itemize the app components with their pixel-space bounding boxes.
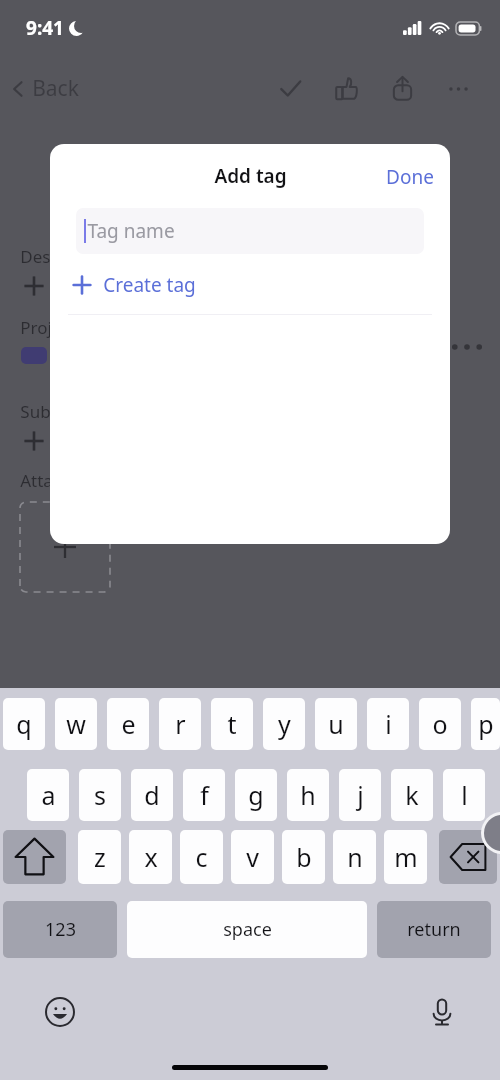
button[interactable]: c: [180, 830, 223, 884]
button[interactable]: Back: [0, 68, 89, 109]
staticText: e: [121, 707, 136, 741]
staticText: Attachments: [20, 469, 122, 492]
button[interactable]: j: [339, 769, 381, 821]
button[interactable]: w: [55, 698, 97, 750]
staticText: o: [432, 707, 448, 741]
button[interactable]: e: [107, 698, 149, 750]
staticText: 9:41: [26, 15, 64, 41]
button[interactable]: o: [419, 698, 461, 750]
staticText: space: [223, 917, 272, 942]
staticText: Tag name: [87, 218, 175, 244]
staticText: Create tag: [103, 272, 196, 298]
button[interactable]: l: [443, 769, 485, 821]
button[interactable]: p: [471, 698, 500, 750]
staticText: d: [144, 778, 160, 812]
button[interactable]: z: [78, 830, 121, 884]
button[interactable]: m: [384, 830, 427, 884]
button[interactable]: t: [211, 698, 253, 750]
button[interactable]: s: [79, 769, 121, 821]
staticText: w: [66, 707, 86, 741]
button[interactable]: 123: [3, 901, 117, 958]
button[interactable]: Like: [318, 64, 374, 112]
staticText: z: [94, 840, 106, 874]
button[interactable]: g: [235, 769, 277, 821]
button[interactable]: d: [131, 769, 173, 821]
button[interactable]: k: [391, 769, 433, 821]
button[interactable]: Tag name: [76, 208, 424, 254]
button[interactable]: u: [315, 698, 357, 750]
staticText: j: [357, 778, 364, 812]
staticText: q: [16, 707, 32, 741]
button[interactable]: return: [377, 901, 491, 958]
button[interactable]: r: [159, 698, 201, 750]
staticText: Project: [20, 316, 76, 339]
staticText: return: [407, 917, 461, 942]
staticText: p: [478, 707, 494, 741]
staticText: b: [296, 840, 312, 874]
button[interactable]: Emoji: [36, 988, 84, 1036]
button[interactable]: Backspace: [439, 830, 497, 884]
button[interactable]: Mark complete: [262, 64, 318, 112]
staticText: 123: [45, 917, 76, 942]
button[interactable]: y: [263, 698, 305, 750]
button[interactable]: Share: [374, 64, 430, 112]
staticText: t: [227, 707, 237, 741]
staticText: l: [461, 778, 468, 812]
button[interactable]: a: [27, 769, 69, 821]
button[interactable]: q: [3, 698, 45, 750]
staticText: i: [385, 707, 392, 741]
staticText: Add tag: [214, 163, 287, 189]
staticText: x: [144, 840, 158, 874]
button[interactable]: Shift: [3, 830, 66, 884]
button[interactable]: b: [282, 830, 325, 884]
button[interactable]: space: [127, 901, 367, 958]
button[interactable]: h: [287, 769, 329, 821]
staticText: h: [300, 778, 316, 812]
staticText: Description: [20, 245, 112, 268]
button[interactable]: x: [129, 830, 172, 884]
staticText: m: [394, 840, 418, 874]
button[interactable]: Dictation: [418, 988, 466, 1036]
button[interactable]: i: [367, 698, 409, 750]
staticText: Done: [386, 164, 434, 190]
staticText: u: [328, 707, 344, 741]
button[interactable]: Done: [370, 156, 450, 198]
staticText: Subtasks: [20, 400, 92, 423]
staticText: k: [405, 778, 419, 812]
staticText: r: [175, 707, 186, 741]
staticText: v: [246, 840, 259, 874]
staticText: g: [248, 778, 264, 812]
staticText: f: [200, 778, 209, 812]
staticText: n: [347, 840, 363, 874]
button[interactable]: n: [333, 830, 376, 884]
staticText: Back: [32, 74, 79, 103]
staticText: c: [195, 840, 208, 874]
button[interactable]: f: [183, 769, 225, 821]
staticText: s: [94, 778, 106, 812]
staticText: y: [278, 707, 291, 741]
button[interactable]: Create tag: [50, 266, 450, 304]
button[interactable]: v: [231, 830, 274, 884]
staticText: a: [41, 778, 56, 812]
